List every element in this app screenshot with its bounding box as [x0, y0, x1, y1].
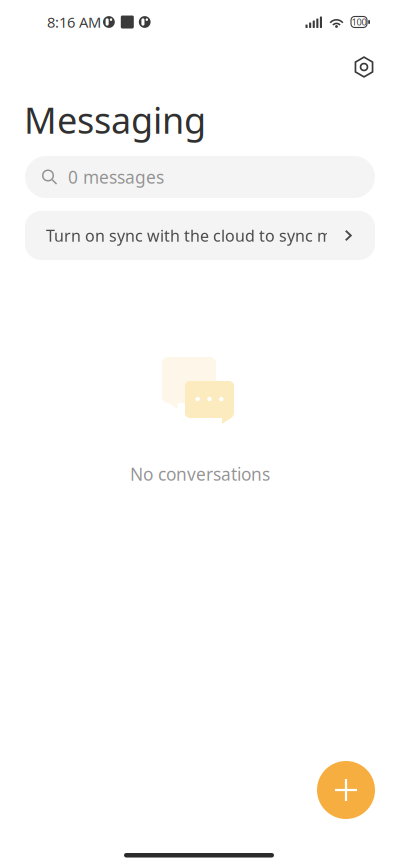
staticText: Messaging — [24, 96, 206, 144]
staticText: Turn on sync with the cloud to sync me — [46, 225, 341, 246]
button[interactable]: 0 messages — [25, 156, 375, 198]
staticText: No conversations — [130, 462, 270, 485]
staticText: 8:16 AM — [47, 12, 101, 32]
button[interactable]: Settings — [342, 45, 386, 89]
button[interactable]: Turn on sync with the cloud to sync me — [25, 211, 375, 260]
button[interactable]: Start new conversation — [317, 761, 375, 819]
staticText: 0 messages — [68, 165, 164, 188]
staticText: 100 — [351, 16, 366, 28]
